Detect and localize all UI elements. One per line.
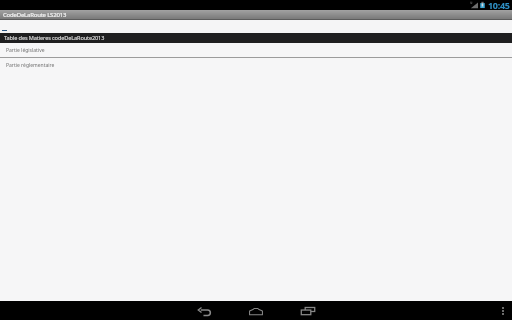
button[interactable]: Partie législative	[0, 43, 512, 57]
staticText: CodeDeLaRoute LS2013	[3, 11, 67, 19]
staticText: 10:45	[488, 0, 510, 9]
button[interactable]: Table des Matieres codeDeLaRoute2013	[0, 33, 512, 43]
button[interactable]: CodeDeLaRoute LS2013	[0, 10, 80, 20]
staticText: Table des Matieres codeDeLaRoute2013	[4, 34, 105, 42]
button[interactable]: More options	[498, 306, 508, 316]
staticText: Partie législative	[6, 47, 45, 54]
button[interactable]: Home	[247, 302, 265, 320]
button[interactable]: Partie réglementaire	[0, 58, 512, 72]
button[interactable]: Recent apps	[299, 302, 317, 320]
button[interactable]: Back	[195, 302, 213, 320]
staticText: Partie réglementaire	[6, 62, 55, 69]
